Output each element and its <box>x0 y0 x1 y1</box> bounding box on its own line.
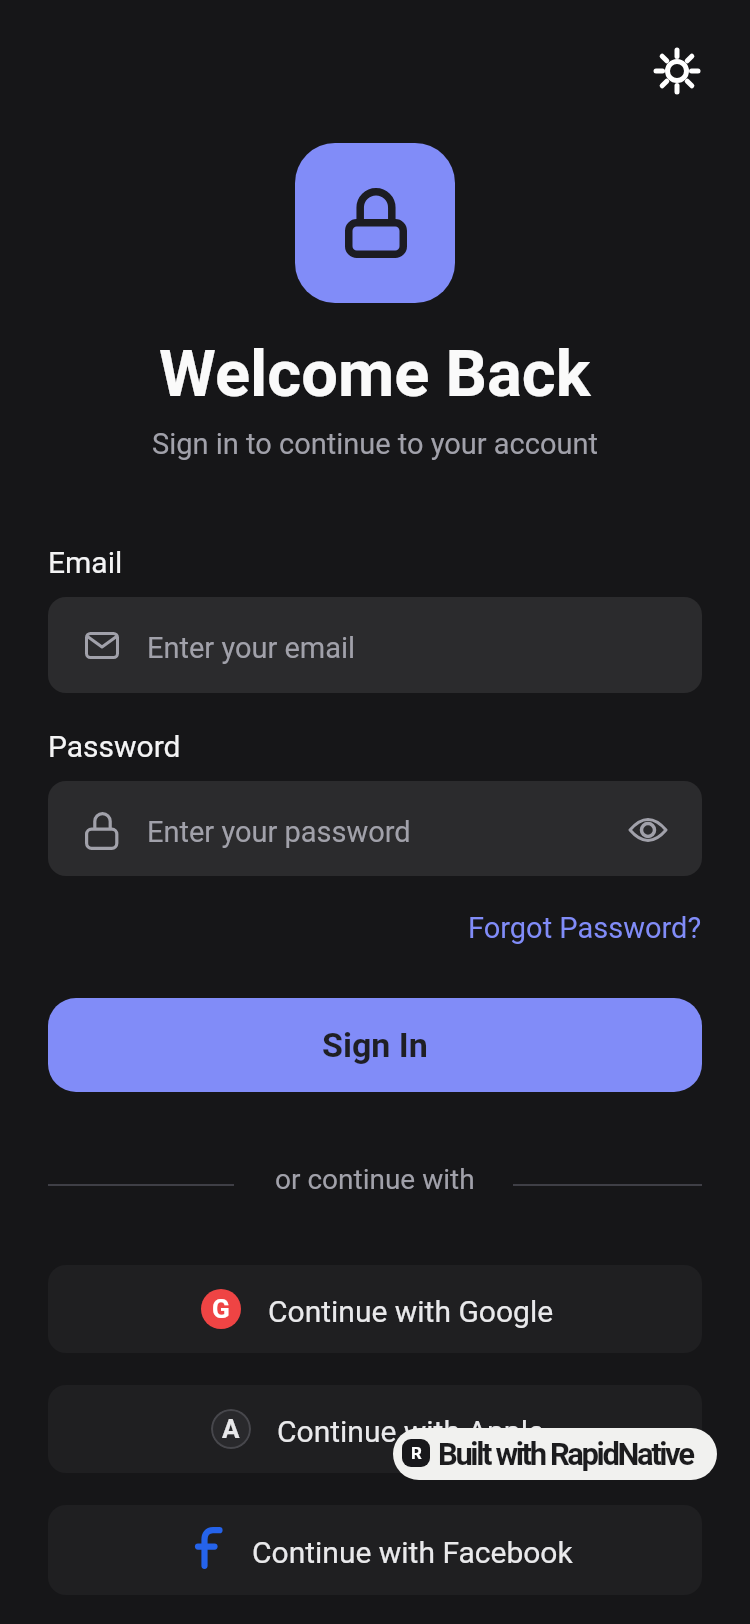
staticText: A <box>222 1414 240 1444</box>
staticText: Continue with Facebook <box>252 1535 573 1570</box>
staticText: Built with RapidNative <box>438 1436 693 1472</box>
staticText: Email <box>48 545 123 580</box>
staticText: or continue with <box>275 1163 475 1196</box>
staticText: Continue with Google <box>268 1294 554 1329</box>
button[interactable]: Enter your email <box>48 597 702 693</box>
staticText: G <box>212 1294 230 1324</box>
button[interactable]: R <box>393 1428 717 1480</box>
staticText: Sign in to continue to your account <box>152 427 598 461</box>
staticText: Enter your email <box>147 631 356 665</box>
staticText: Sign In <box>322 1025 428 1065</box>
button[interactable]: A <box>48 1385 702 1473</box>
staticText: Enter your password <box>147 815 411 849</box>
button[interactable]: Sign In <box>48 998 702 1092</box>
button[interactable] <box>628 816 668 844</box>
button[interactable]: G <box>48 1265 702 1353</box>
staticText: Welcome Back <box>159 336 591 412</box>
staticText: Password <box>48 729 181 764</box>
staticText: Forgot Password? <box>468 911 702 945</box>
button[interactable] <box>649 43 705 99</box>
staticText: R <box>411 1443 422 1463</box>
staticText: Continue with Apple <box>277 1414 544 1449</box>
button[interactable]: Forgot Password? <box>0 911 702 945</box>
button[interactable]: Enter your password <box>48 781 702 876</box>
button[interactable]: Continue with Facebook <box>48 1505 702 1595</box>
